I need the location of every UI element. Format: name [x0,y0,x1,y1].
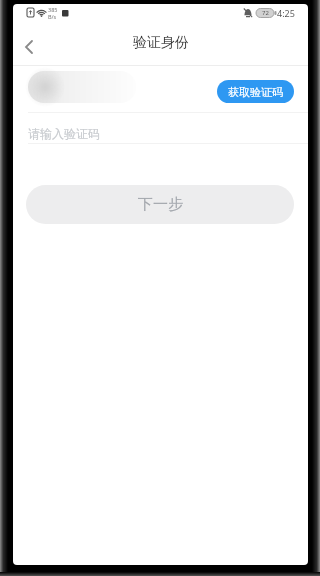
staticText: 验证身份 [133,34,189,52]
staticText: 72 [262,9,269,17]
staticText: 4:25 [277,7,295,19]
staticText: 获取验证码 [228,85,283,99]
button[interactable]: 获取验证码 [217,80,294,103]
staticText: B/s [48,13,57,20]
staticText: 请输入验证码 [28,126,100,141]
button[interactable] [17,25,45,61]
staticText: 下一步 [138,195,183,214]
button[interactable]: 下一步 [26,185,294,224]
button[interactable]: 请输入验证码 [13,113,308,144]
staticText: 385 [48,6,58,13]
